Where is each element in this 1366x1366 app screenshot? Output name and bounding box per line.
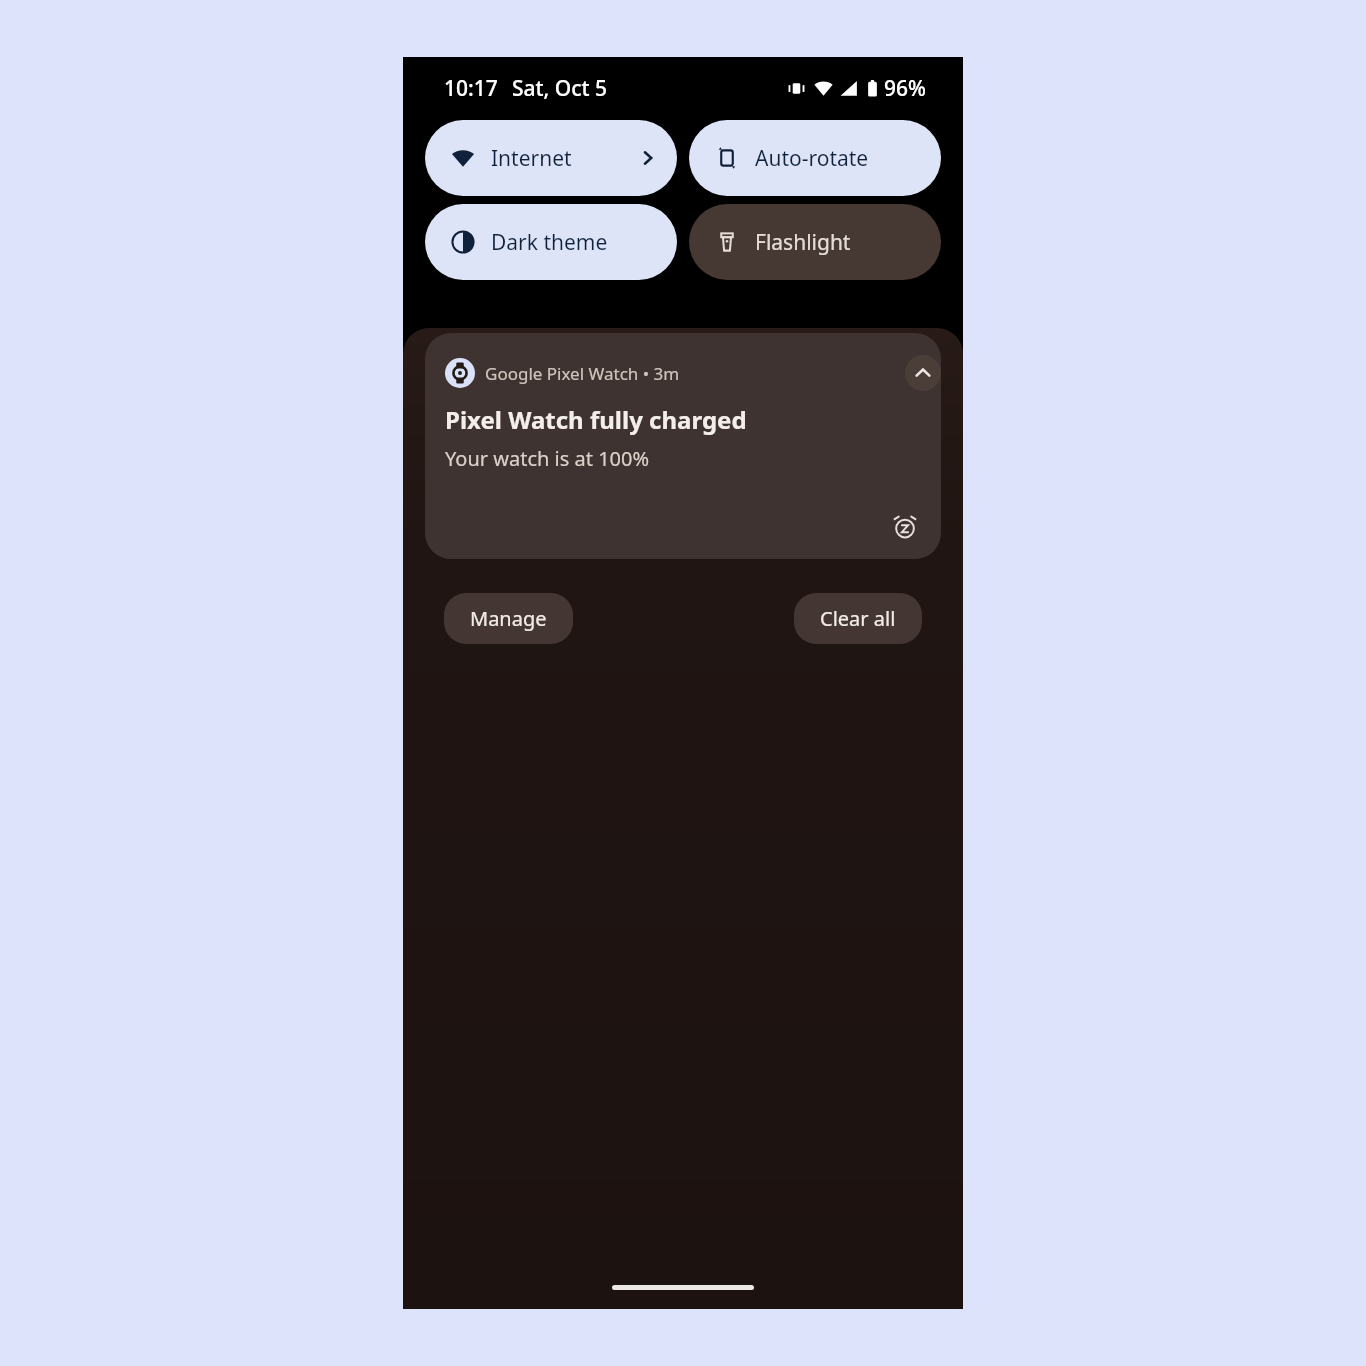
button[interactable]: Auto-rotate	[689, 120, 941, 196]
staticText: Your watch is at 100%	[445, 445, 650, 472]
staticText: Dark theme	[491, 228, 608, 257]
button[interactable]: Dark theme	[425, 204, 677, 280]
button[interactable]: Clear all	[794, 593, 922, 644]
staticText: Pixel Watch fully charged	[445, 403, 747, 436]
staticText: Auto-rotate	[755, 144, 869, 173]
button[interactable]: Internet	[425, 120, 677, 196]
staticText: 96%	[884, 74, 926, 103]
button[interactable]: Flashlight	[689, 204, 941, 280]
staticText: Manage	[470, 605, 547, 632]
button[interactable]: Manage	[444, 593, 573, 644]
button[interactable]: Collapse notification	[905, 355, 941, 391]
staticText: Google Pixel Watch • 3m	[485, 362, 680, 385]
staticText: Sat, Oct 5	[512, 74, 608, 103]
button[interactable]: Snooze	[885, 507, 925, 547]
staticText: Flashlight	[755, 228, 851, 257]
button[interactable]: Google Pixel Watch • 3m	[425, 333, 941, 559]
staticText: 10:17	[444, 74, 498, 103]
staticText: Clear all	[820, 605, 896, 632]
staticText: Internet	[491, 144, 572, 173]
